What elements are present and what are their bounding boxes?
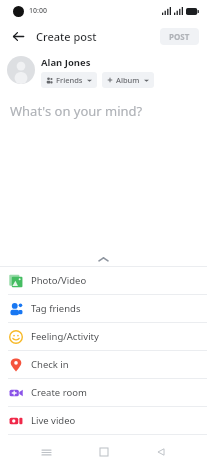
button[interactable]: Feeling/Activity [0, 323, 207, 350]
button[interactable]: Create room [0, 379, 207, 406]
button[interactable]: Tag friends [0, 295, 207, 322]
button[interactable]: Album [102, 72, 154, 88]
button[interactable]: Back [150, 442, 172, 462]
staticText: Album [116, 75, 140, 85]
staticText: Photo/Video [31, 274, 87, 287]
button[interactable]: Expand [0, 252, 207, 266]
button[interactable]: Camera [0, 435, 207, 462]
staticText: Alan Jones [41, 56, 91, 69]
button[interactable]: Home [93, 442, 115, 462]
button[interactable]: Friends [41, 72, 97, 88]
staticText: Friends [56, 75, 83, 85]
button[interactable]: Recents [35, 442, 57, 462]
staticText: Create post [36, 29, 97, 44]
staticText: Live video [31, 414, 76, 427]
staticText: Create room [31, 386, 87, 399]
button[interactable]: Back [7, 25, 29, 47]
staticText: 10:00 [29, 6, 47, 16]
button[interactable]: POST [160, 28, 199, 45]
button[interactable]: Check in [0, 351, 207, 378]
button[interactable]: What's on your mind? [10, 102, 207, 120]
staticText: Camera [31, 442, 66, 455]
button[interactable]: Photo/Video [0, 267, 207, 294]
staticText: Check in [31, 358, 69, 371]
button[interactable]: Live video [0, 407, 207, 434]
staticText: Tag friends [31, 302, 81, 315]
staticText: Feeling/Activity [31, 330, 99, 343]
staticText: POST [169, 31, 190, 42]
button[interactable]: Profile picture [7, 56, 35, 84]
staticText: What's on your mind? [10, 102, 143, 120]
